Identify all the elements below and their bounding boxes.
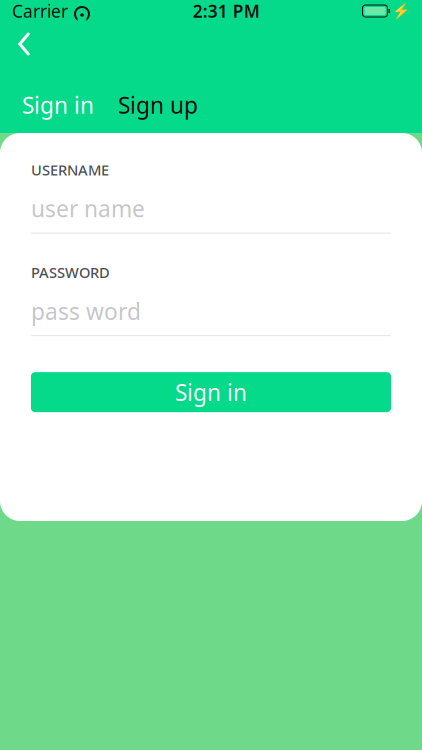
button[interactable]: Sign in <box>22 90 118 120</box>
staticText: pass word <box>31 296 141 326</box>
staticText: ⚡ <box>392 3 410 19</box>
staticText: user name <box>31 193 145 224</box>
staticText: Sign in <box>22 90 94 120</box>
staticText: Sign up <box>118 90 198 120</box>
staticText: PASSWORD <box>31 263 110 282</box>
button[interactable]: Sign up <box>118 90 228 120</box>
button[interactable]: Sign in <box>31 372 391 412</box>
staticText: USERNAME <box>31 160 109 179</box>
staticText: 2:31 PM <box>193 0 260 22</box>
staticText: Carrier <box>12 0 68 22</box>
staticText: Sign in <box>175 377 247 407</box>
button[interactable]: Back <box>2 27 46 61</box>
